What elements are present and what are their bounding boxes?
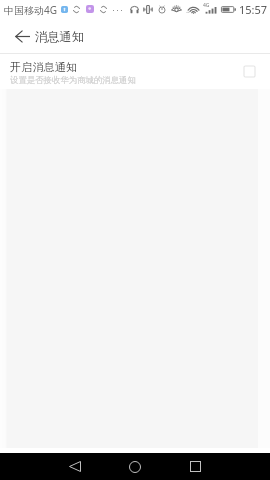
- staticText: 设置是否接收华为商城的消息通知: [10, 75, 136, 86]
- button[interactable]: Recents: [165, 453, 225, 480]
- staticText: 中国移动4G: [4, 3, 57, 17]
- staticText: 15:57: [239, 2, 268, 17]
- staticText: 消息通知: [35, 29, 85, 44]
- button[interactable]: 开启消息通知: [0, 53, 270, 89]
- button[interactable]: Home: [105, 453, 165, 480]
- button[interactable]: Back: [45, 453, 105, 480]
- button[interactable]: Back: [6, 20, 38, 53]
- staticText: 4G: [203, 2, 210, 9]
- staticText: 开启消息通知: [10, 60, 78, 74]
- button[interactable]: Toggle notifications: [238, 53, 260, 89]
